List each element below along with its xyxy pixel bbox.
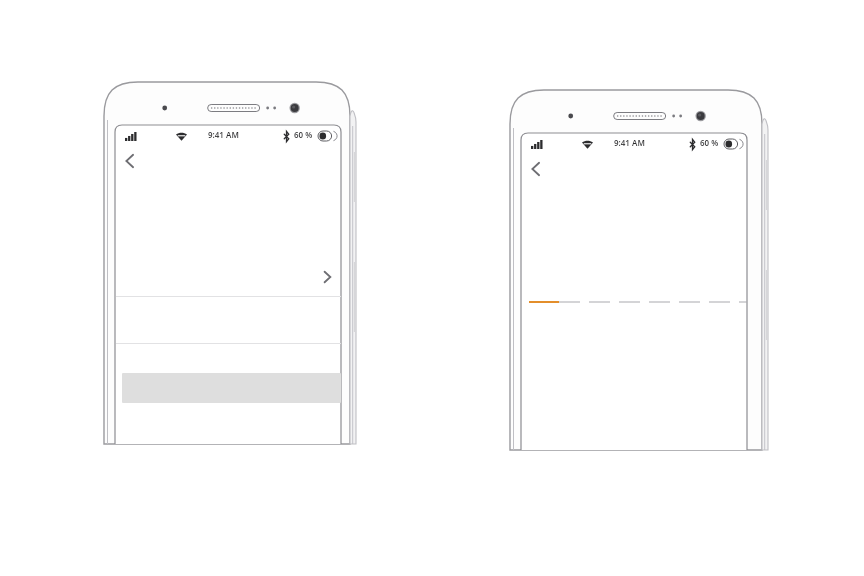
staticText: 9:41 AM [614, 137, 645, 148]
staticText: 60 % [294, 129, 313, 140]
staticText: 60 % [700, 137, 719, 148]
button[interactable]: Open [315, 265, 339, 289]
button[interactable]: 9:41 AM [96, 72, 364, 452]
button[interactable]: 9:41 AM [500, 80, 780, 460]
staticText: 9:41 AM [208, 129, 239, 140]
button[interactable]: Back [523, 156, 549, 182]
button[interactable]: Back [117, 148, 143, 174]
